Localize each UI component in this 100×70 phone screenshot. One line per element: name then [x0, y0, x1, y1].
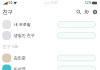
staticText: 김민준: [14, 55, 26, 60]
button[interactable]: Settings: [91, 8, 99, 16]
staticText: 친구 128: [3, 44, 18, 49]
button[interactable]: 생일인 친구: [0, 30, 100, 41]
staticText: 친구: [2, 9, 12, 15]
button[interactable]: 김민준: [0, 52, 100, 63]
staticText: 오전 9:41: [44, 1, 58, 5]
button[interactable]: 내 프로필: [0, 19, 100, 30]
button[interactable]: Add friend: [83, 8, 91, 16]
staticText: 52%: [85, 1, 91, 5]
staticText: 생일인 친구: [14, 33, 35, 38]
staticText: 이서연: [14, 66, 26, 70]
button[interactable]: 이서연: [0, 63, 100, 70]
button[interactable]: Search: [75, 8, 83, 16]
staticText: 5G: [8, 1, 12, 5]
staticText: 내 프로필: [14, 22, 31, 27]
